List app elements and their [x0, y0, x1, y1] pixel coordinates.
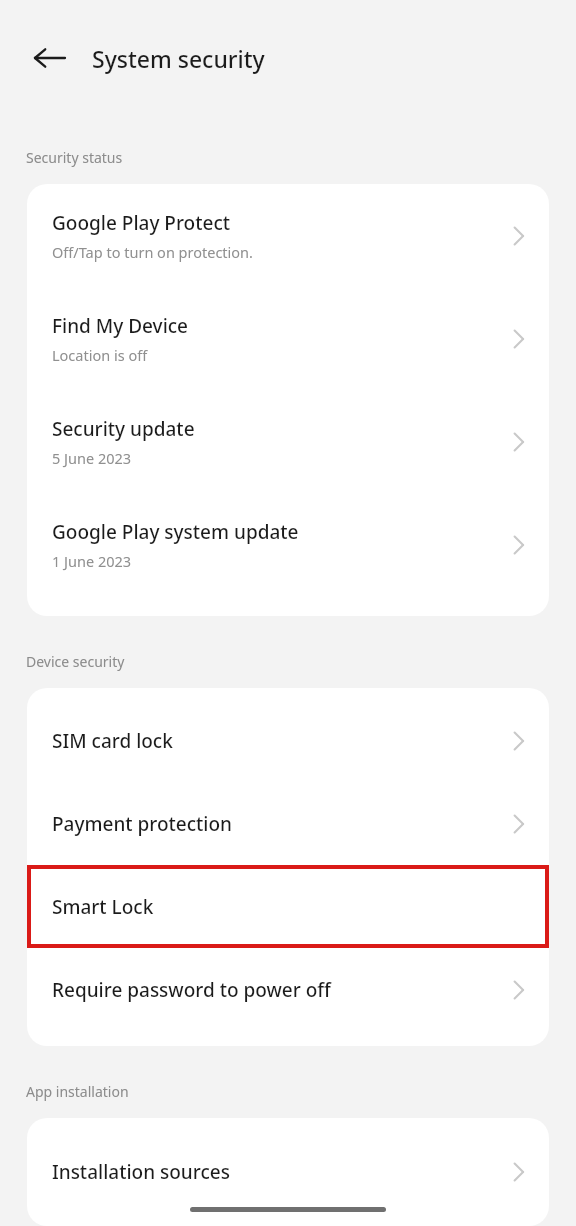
button[interactable]: SIM card lock	[27, 699, 549, 782]
button[interactable]: Google Play Protect	[27, 184, 549, 287]
staticText: 1 June 2023	[52, 551, 132, 571]
staticText: Location is off	[52, 345, 148, 365]
staticText: Device security	[26, 652, 125, 671]
button[interactable]: Security update	[27, 390, 549, 493]
button[interactable]: Smart Lock	[27, 865, 549, 948]
staticText: SIM card lock	[52, 728, 173, 754]
staticText: Require password to power off	[52, 977, 331, 1003]
staticText: App installation	[26, 1082, 129, 1101]
staticText: Smart Lock	[52, 894, 154, 920]
button[interactable]: Back	[22, 30, 78, 86]
button[interactable]: Payment protection	[27, 782, 549, 865]
staticText: Payment protection	[52, 811, 233, 837]
button[interactable]: Find My Device	[27, 287, 549, 390]
button[interactable]: Installation sources	[27, 1130, 549, 1213]
staticText: Google Play system update	[52, 519, 299, 545]
button[interactable]: Google Play system update	[27, 493, 549, 596]
staticText: Installation sources	[52, 1159, 230, 1185]
staticText: Google Play Protect	[52, 210, 230, 236]
staticText: Find My Device	[52, 313, 189, 339]
staticText: Security status	[26, 148, 123, 167]
staticText: 5 June 2023	[52, 448, 132, 468]
staticText: System security	[92, 43, 265, 74]
staticText: Security update	[52, 416, 195, 442]
staticText: Off/Tap to turn on protection.	[52, 242, 253, 262]
button[interactable]: Require password to power off	[27, 948, 549, 1031]
